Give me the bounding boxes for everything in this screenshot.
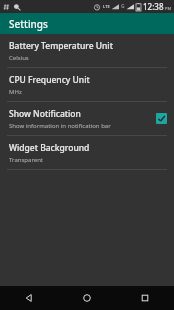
staticText: Transparent — [9, 156, 44, 164]
button[interactable]: Home — [58, 286, 116, 310]
staticText: PM — [165, 6, 172, 11]
staticText: CPU Frequency Unit — [9, 74, 90, 86]
staticText: Celsius — [9, 54, 29, 62]
staticText: Widget Background — [9, 142, 90, 154]
button[interactable]: Show Notification — [0, 102, 174, 135]
button[interactable]: CPU Frequency Unit — [0, 68, 174, 101]
staticText: Settings — [9, 17, 48, 31]
staticText: MHz — [9, 88, 22, 96]
staticText: LTE — [103, 4, 110, 9]
button[interactable]: Widget Background — [0, 136, 174, 169]
button[interactable]: Battery Temperature Unit — [0, 34, 174, 67]
staticText: Show information in notification bar — [9, 122, 111, 130]
staticText: G — [121, 3, 125, 10]
staticText: 12:38 — [143, 1, 164, 12]
button[interactable]: Recent apps — [116, 286, 174, 310]
button[interactable]: Back — [0, 286, 58, 310]
staticText: Battery Temperature Unit — [9, 40, 113, 52]
staticText: Show Notification — [9, 108, 81, 120]
button[interactable]: Show Notification toggle — [156, 113, 167, 124]
